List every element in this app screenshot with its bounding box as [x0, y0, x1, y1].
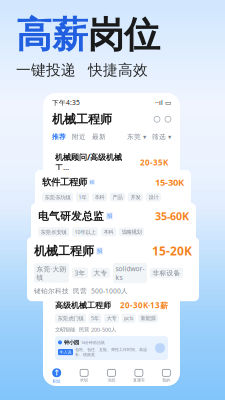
- staticText: ↑: [53, 368, 60, 377]
- staticText: 文昭智能 民营 200-500人: [55, 326, 116, 333]
- staticText: 机械顾问/高级机械工...: [55, 152, 122, 173]
- staticText: 设计: [148, 194, 158, 200]
- staticText: 15-20K: [152, 243, 192, 259]
- button[interactable]: 软件工程师: [35, 170, 191, 208]
- staticText: 推荐: [52, 133, 66, 141]
- staticText: 东莞·虎门镇: [57, 315, 83, 322]
- staticText: 战略规划: [121, 229, 141, 235]
- button[interactable]: 求职: [70, 366, 98, 386]
- staticText: 软件工程师: [42, 176, 87, 188]
- staticText: 下午4:35: [52, 98, 80, 107]
- button[interactable]: 消息: [98, 366, 125, 386]
- staticText: 东莞 ▾ 筛选 ▾: [127, 133, 171, 141]
- staticText: 开发: [130, 194, 140, 200]
- staticText: 机械工程师: [34, 244, 94, 258]
- staticText: 35-60K: [155, 209, 189, 223]
- staticText: 高薪: [16, 13, 88, 57]
- staticText: 10年: [91, 177, 102, 184]
- staticText: 产品: [112, 194, 122, 200]
- staticText: 大专: [93, 269, 107, 277]
- staticText: 招: [107, 213, 112, 219]
- staticText: 人así造基产品: [127, 177, 159, 184]
- staticText: 5年: [91, 315, 99, 322]
- staticText: 铑铂尔科技 民营 500-1000人: [34, 286, 128, 295]
- staticText: 大专: [106, 315, 116, 322]
- staticText: 招: [90, 180, 94, 185]
- staticText: ··ıl ▭: [155, 98, 171, 107]
- staticText: 一键投递 快捷高效: [16, 61, 148, 79]
- button[interactable]: ↑: [43, 366, 70, 386]
- staticText: 消息: [107, 378, 115, 383]
- staticText: 我的: [162, 378, 170, 383]
- staticText: 电气研发总监: [38, 209, 104, 223]
- staticText: 钟小园: [64, 339, 79, 346]
- staticText: 东莞·长安镇: [40, 228, 66, 235]
- staticText: 本科: [103, 229, 113, 235]
- staticText: 15-30K: [155, 176, 184, 188]
- staticText: pcb: [124, 315, 133, 322]
- staticText: 14分钟前活跃: [81, 340, 105, 345]
- staticText: 本科: [94, 194, 104, 200]
- staticText: 高级机械工程师: [55, 300, 111, 310]
- staticText: 东莞·东坑镇: [44, 194, 70, 201]
- staticText: 20-30K·13薪: [120, 300, 168, 311]
- staticText: 最新: [92, 133, 106, 141]
- staticText: solidworks: [115, 264, 144, 282]
- staticText: 招: [97, 248, 102, 254]
- staticText: 牛人说: [59, 350, 71, 354]
- staticText: 求职: [80, 378, 88, 383]
- staticText: 岗位: [88, 13, 160, 57]
- staticText: 机械工程师: [52, 112, 112, 127]
- button[interactable]: 直通车: [125, 366, 153, 386]
- staticText: 东莞·塘厦镇: [57, 177, 83, 184]
- staticText: 新能源: [140, 315, 155, 322]
- staticText: 附近: [72, 133, 86, 141]
- button[interactable]: 我的: [153, 366, 180, 386]
- button[interactable]: 机械工程师: [27, 237, 199, 301]
- staticText: 包吃、包住、五险、弹性工作时间、高温补、绩效奖: [75, 347, 147, 357]
- staticText: 1年: [78, 194, 86, 201]
- staticText: 20-35K: [140, 157, 168, 168]
- staticText: 10年以上: [74, 228, 95, 235]
- staticText: 职位: [53, 379, 61, 384]
- staticText: 东莞·大朗镇: [36, 264, 66, 281]
- staticText: 3年: [74, 269, 85, 277]
- staticText: 直通车: [133, 378, 145, 383]
- button[interactable]: 电气研发总监: [31, 203, 196, 243]
- staticText: 非标设备: [152, 269, 180, 277]
